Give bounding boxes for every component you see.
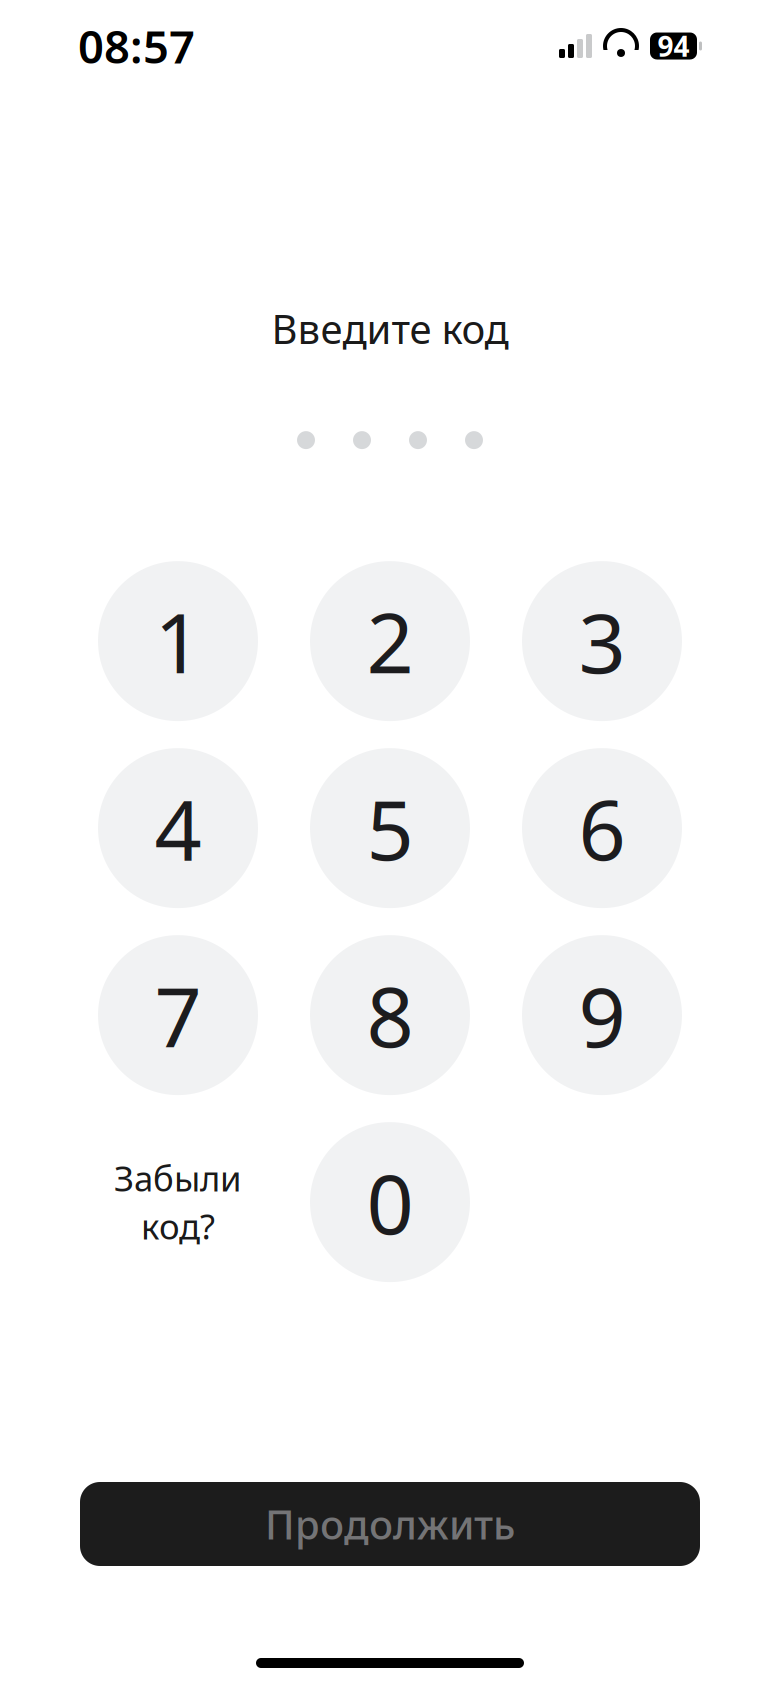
staticText: 8: [366, 960, 413, 1070]
staticText: 5: [366, 773, 413, 883]
staticText: Введите код: [271, 302, 508, 355]
button[interactable]: 7: [98, 935, 258, 1095]
button[interactable]: 4: [98, 748, 258, 908]
staticText: 08:57: [78, 16, 195, 76]
staticText: Продолжить: [265, 1497, 515, 1550]
staticText: 2: [366, 586, 413, 696]
button[interactable]: 3: [522, 561, 682, 721]
staticText: 6: [578, 773, 625, 883]
staticText: 9: [578, 960, 625, 1070]
button[interactable]: 0: [310, 1122, 470, 1282]
button[interactable]: 8: [310, 935, 470, 1095]
staticText: Забыли: [114, 1155, 242, 1201]
staticText: 0: [366, 1147, 413, 1257]
button[interactable]: Продолжить: [80, 1482, 700, 1566]
button[interactable]: 9: [522, 935, 682, 1095]
button[interactable]: 2: [310, 561, 470, 721]
staticText: 94: [657, 27, 689, 65]
button[interactable]: 5: [310, 748, 470, 908]
button[interactable]: Забыли: [98, 1122, 258, 1282]
staticText: 7: [154, 960, 201, 1070]
staticText: 1: [154, 586, 201, 696]
staticText: 3: [578, 586, 625, 696]
button[interactable]: 6: [522, 748, 682, 908]
staticText: код?: [141, 1203, 215, 1249]
button[interactable]: 1: [98, 561, 258, 721]
staticText: 4: [154, 773, 201, 883]
